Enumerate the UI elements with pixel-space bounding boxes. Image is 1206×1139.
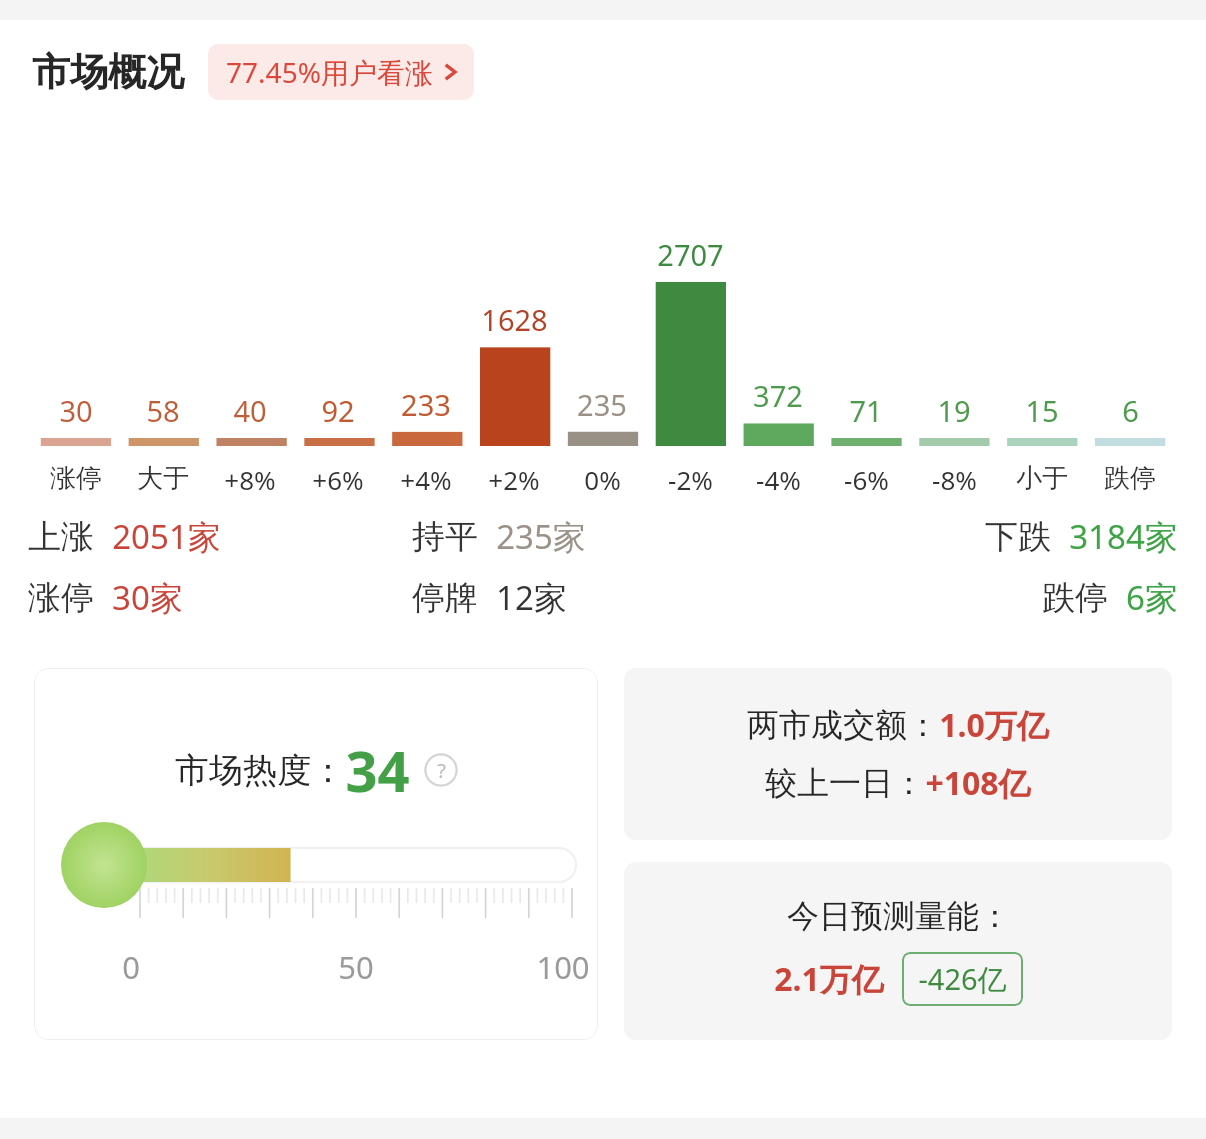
- staticText: +4%: [400, 462, 452, 497]
- staticText: 上涨: [28, 516, 94, 558]
- button[interactable]: 今日预测量能：: [624, 862, 1172, 1040]
- staticText: 50: [338, 946, 374, 988]
- staticText: 2051家: [112, 514, 221, 559]
- staticText: +8%: [224, 462, 276, 497]
- staticText: -8%: [932, 462, 977, 497]
- staticText: 小于: [1016, 462, 1068, 495]
- button[interactable]: 市场热度说明: [424, 753, 458, 787]
- staticText: 235家: [496, 514, 586, 559]
- staticText: 市场热度：: [175, 749, 345, 792]
- staticText: 233: [401, 385, 451, 424]
- staticText: 跌停: [1042, 577, 1108, 619]
- staticText: 大于: [137, 462, 189, 495]
- staticText: 6家: [1126, 575, 1178, 620]
- button[interactable]: 两市成交额：: [624, 668, 1172, 840]
- button[interactable]: 77.45%用户看涨: [208, 44, 474, 100]
- staticText: ?: [437, 757, 446, 784]
- staticText: 停牌: [412, 577, 478, 619]
- staticText: 58: [146, 391, 180, 430]
- staticText: 较上一日：: [765, 763, 925, 803]
- staticText: 372: [753, 376, 803, 415]
- staticText: +108亿: [925, 761, 1031, 805]
- staticText: 1628: [481, 300, 548, 339]
- staticText: -6%: [844, 462, 889, 497]
- staticText: -426亿: [918, 959, 1007, 999]
- staticText: 235: [577, 385, 627, 424]
- staticText: 1.0万亿: [939, 703, 1049, 747]
- staticText: 市场概况: [32, 48, 184, 96]
- staticText: 30家: [112, 575, 183, 620]
- staticText: 100: [536, 946, 590, 988]
- staticText: +2%: [488, 462, 540, 497]
- staticText: 0%: [584, 462, 621, 497]
- staticText: 0: [122, 946, 140, 988]
- staticText: 71: [849, 391, 883, 430]
- staticText: -4%: [756, 462, 801, 497]
- staticText: 34: [345, 732, 410, 808]
- staticText: 2.1万亿: [774, 957, 884, 1001]
- staticText: 今日预测量能：: [787, 896, 1011, 936]
- staticText: +6%: [312, 462, 364, 497]
- staticText: -2%: [668, 462, 713, 497]
- button[interactable]: 市场热度：: [34, 668, 598, 1040]
- staticText: 77.45%用户看涨: [226, 53, 433, 91]
- staticText: 两市成交额：: [747, 705, 939, 745]
- staticText: 15: [1025, 391, 1059, 430]
- staticText: 跌停: [1104, 462, 1156, 495]
- staticText: 6: [1122, 391, 1139, 430]
- staticText: 30: [59, 391, 93, 430]
- staticText: 19: [937, 391, 971, 430]
- staticText: 3184家: [1069, 514, 1178, 559]
- staticText: 涨停: [50, 462, 102, 495]
- staticText: 92: [321, 391, 355, 430]
- staticText: 下跌: [985, 516, 1051, 558]
- staticText: 持平: [412, 516, 478, 558]
- staticText: 12家: [496, 575, 567, 620]
- staticText: 40: [233, 391, 267, 430]
- staticText: 2707: [657, 235, 724, 274]
- staticText: 涨停: [28, 577, 94, 619]
